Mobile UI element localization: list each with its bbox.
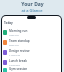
button[interactable]: Gym session — [2, 67, 61, 72]
staticText: 7:00 AM — [9, 33, 19, 36]
staticText: Gym session — [9, 67, 28, 71]
staticText: Design review — [9, 49, 30, 53]
staticText: 9:30 AM — [9, 43, 19, 46]
button[interactable]: Design review — [2, 47, 61, 57]
staticText: Your Day — [21, 1, 44, 8]
staticText: Today — [4, 21, 13, 25]
button[interactable]: Team standup — [2, 37, 61, 47]
button[interactable]: Morning run — [2, 27, 61, 37]
staticText: 12:30 PM — [9, 63, 20, 66]
staticText: at a Glance — [21, 8, 43, 13]
staticText: Team standup — [9, 39, 30, 43]
staticText: 11:00 AM — [9, 53, 20, 56]
staticText: Morning run — [9, 29, 28, 33]
button[interactable]: Lunch break — [2, 57, 61, 67]
staticText: Lunch break — [9, 59, 28, 63]
